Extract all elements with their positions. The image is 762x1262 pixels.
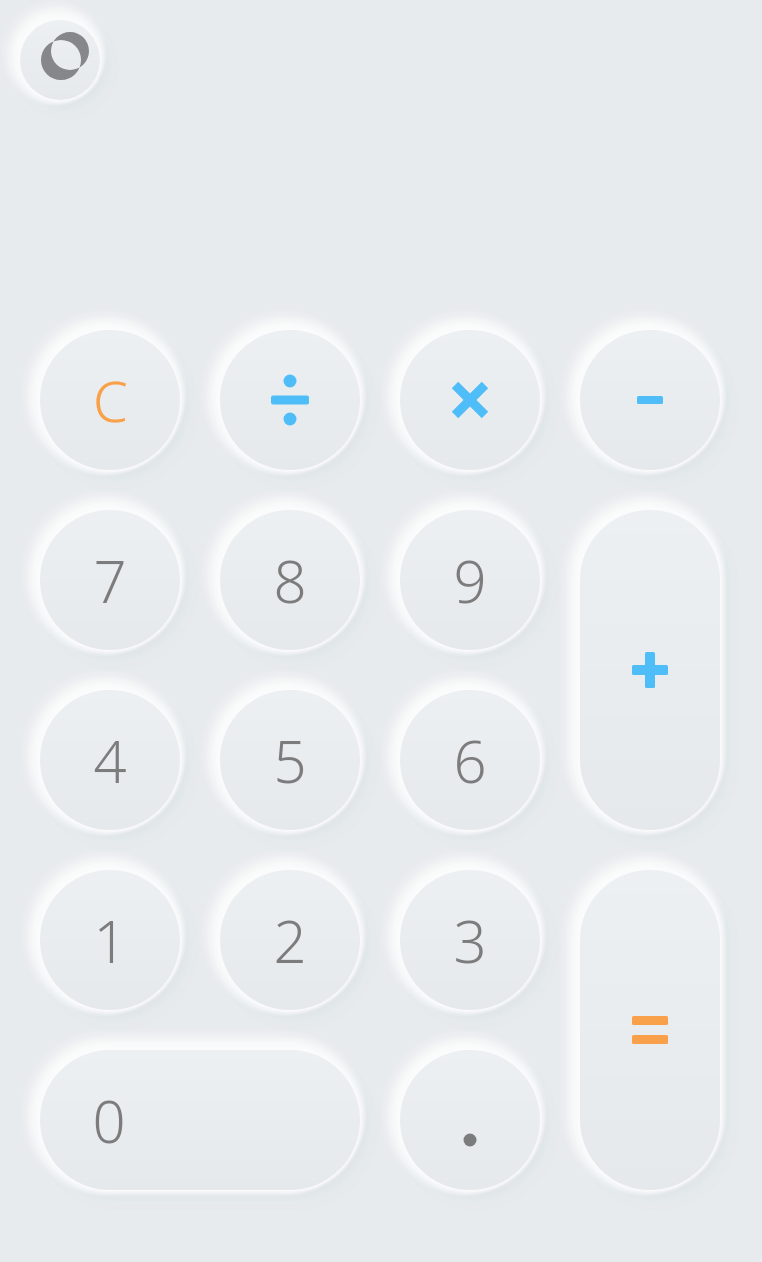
button[interactable]: Subtract bbox=[580, 330, 720, 470]
button[interactable]: 8 bbox=[220, 510, 360, 650]
staticText: 9 bbox=[453, 541, 487, 620]
staticText: 6 bbox=[453, 721, 487, 800]
staticText: 3 bbox=[453, 901, 487, 980]
button[interactable]: 5 bbox=[220, 690, 360, 830]
staticText: 7 bbox=[93, 541, 127, 620]
button[interactable]: Decimal point bbox=[400, 1050, 540, 1190]
button[interactable]: Divide bbox=[220, 330, 360, 470]
button[interactable]: 1 bbox=[40, 870, 180, 1010]
staticText: C bbox=[93, 362, 128, 438]
button[interactable]: 4 bbox=[40, 690, 180, 830]
button[interactable]: 7 bbox=[40, 510, 180, 650]
staticText: 2 bbox=[273, 901, 307, 980]
button[interactable]: Clear bbox=[40, 330, 180, 470]
button[interactable]: 0 bbox=[40, 1050, 360, 1190]
button[interactable]: Add bbox=[580, 510, 720, 830]
button[interactable]: Toggle dark mode bbox=[20, 20, 100, 100]
button[interactable]: 9 bbox=[400, 510, 540, 650]
staticText: 5 bbox=[273, 721, 307, 800]
staticText: 4 bbox=[93, 721, 127, 800]
staticText: 1 bbox=[93, 901, 127, 980]
button[interactable]: 2 bbox=[220, 870, 360, 1010]
button[interactable]: Multiply bbox=[400, 330, 540, 470]
button[interactable]: Equals bbox=[580, 870, 720, 1190]
button[interactable]: 3 bbox=[400, 870, 540, 1010]
button[interactable]: 6 bbox=[400, 690, 540, 830]
staticText: 8 bbox=[273, 541, 307, 620]
staticText: 0 bbox=[92, 1081, 126, 1160]
